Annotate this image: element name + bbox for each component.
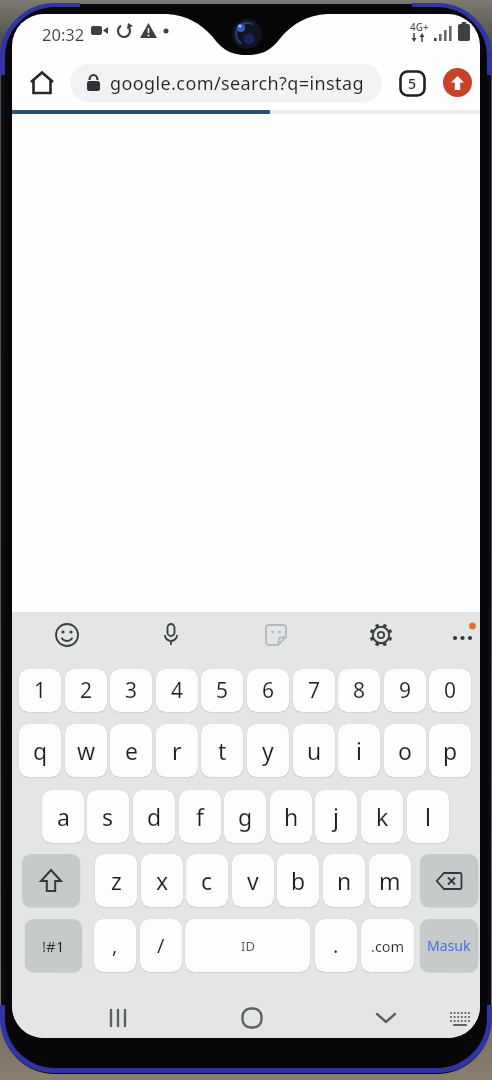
- button[interactable]: 7: [293, 669, 335, 712]
- button[interactable]: z: [95, 854, 137, 907]
- staticText: o: [398, 735, 412, 766]
- button[interactable]: [448, 621, 478, 651]
- button[interactable]: s: [87, 790, 129, 843]
- button[interactable]: f: [179, 790, 221, 843]
- staticText: i: [356, 735, 362, 766]
- staticText: 8: [353, 676, 366, 705]
- staticText: Masuk: [427, 936, 471, 955]
- button[interactable]: 5: [399, 70, 426, 97]
- staticText: 4: [171, 676, 184, 705]
- button[interactable]: 3: [110, 669, 152, 712]
- button[interactable]: 9: [384, 669, 426, 712]
- button[interactable]: y: [247, 724, 289, 777]
- button[interactable]: ,: [94, 919, 136, 972]
- staticText: b: [291, 865, 306, 896]
- button[interactable]: a: [42, 790, 84, 843]
- staticText: v: [247, 865, 259, 896]
- button[interactable]: [107, 1007, 131, 1029]
- button[interactable]: [367, 621, 395, 649]
- staticText: 5: [216, 676, 229, 705]
- button[interactable]: 8: [338, 669, 380, 712]
- button[interactable]: j: [315, 790, 357, 843]
- staticText: n: [337, 865, 352, 896]
- button[interactable]: t: [201, 724, 243, 777]
- button[interactable]: k: [361, 790, 403, 843]
- button[interactable]: 1: [19, 669, 61, 712]
- button[interactable]: /: [140, 919, 182, 972]
- staticText: w: [77, 735, 96, 766]
- button[interactable]: h: [270, 790, 312, 843]
- staticText: /: [157, 932, 165, 959]
- button[interactable]: 4: [156, 669, 198, 712]
- button[interactable]: x: [141, 854, 183, 907]
- staticText: 2: [80, 676, 93, 705]
- button[interactable]: q: [19, 724, 61, 777]
- button[interactable]: [241, 1007, 263, 1029]
- staticText: ID: [241, 937, 255, 955]
- button[interactable]: r: [156, 724, 198, 777]
- button[interactable]: l: [407, 790, 449, 843]
- staticText: 20:32: [42, 23, 85, 45]
- button[interactable]: e: [110, 724, 152, 777]
- button[interactable]: m: [369, 854, 411, 907]
- staticText: .: [333, 932, 339, 959]
- staticText: e: [125, 735, 138, 766]
- staticText: a: [57, 801, 70, 832]
- button[interactable]: 0: [429, 669, 471, 712]
- button[interactable]: i: [338, 724, 380, 777]
- button[interactable]: [28, 69, 56, 97]
- button[interactable]: g: [224, 790, 266, 843]
- staticText: 0: [444, 676, 457, 705]
- button[interactable]: d: [133, 790, 175, 843]
- button[interactable]: [420, 854, 478, 907]
- staticText: 6: [262, 676, 275, 705]
- staticText: s: [102, 801, 114, 832]
- staticText: 4G+: [410, 20, 429, 34]
- button[interactable]: [157, 621, 185, 649]
- button[interactable]: [53, 621, 81, 649]
- staticText: k: [376, 801, 389, 832]
- staticText: l: [425, 801, 431, 832]
- button[interactable]: .com: [361, 919, 414, 972]
- button[interactable]: c: [186, 854, 228, 907]
- staticText: !#1: [42, 936, 65, 956]
- staticText: f: [196, 801, 204, 832]
- staticText: z: [111, 865, 122, 896]
- button[interactable]: [375, 1011, 397, 1025]
- button[interactable]: 6: [247, 669, 289, 712]
- staticText: h: [284, 801, 299, 832]
- button[interactable]: !#1: [25, 919, 82, 972]
- button[interactable]: 2: [65, 669, 107, 712]
- button[interactable]: [22, 854, 80, 907]
- staticText: q: [33, 735, 48, 766]
- staticText: .com: [371, 936, 405, 956]
- staticText: r: [172, 735, 182, 766]
- button[interactable]: o: [384, 724, 426, 777]
- staticText: j: [333, 801, 339, 832]
- staticText: u: [307, 735, 322, 766]
- button[interactable]: Masuk: [420, 919, 478, 972]
- staticText: 1: [34, 676, 47, 705]
- button[interactable]: b: [277, 854, 319, 907]
- button[interactable]: ID: [185, 919, 310, 972]
- staticText: ,: [112, 932, 118, 959]
- staticText: m: [379, 865, 401, 896]
- staticText: google.com/search?q=instag: [110, 71, 364, 96]
- button[interactable]: [448, 1009, 472, 1027]
- staticText: c: [201, 865, 213, 896]
- button[interactable]: u: [293, 724, 335, 777]
- staticText: x: [156, 865, 169, 896]
- button[interactable]: 5: [201, 669, 243, 712]
- button[interactable]: .: [315, 919, 357, 972]
- button[interactable]: p: [429, 724, 471, 777]
- button[interactable]: w: [65, 724, 107, 777]
- staticText: d: [147, 801, 162, 832]
- staticText: g: [238, 801, 253, 832]
- button[interactable]: google.com/search?q=instag: [70, 64, 382, 102]
- button[interactable]: [443, 68, 472, 97]
- button[interactable]: [262, 621, 290, 649]
- button[interactable]: v: [232, 854, 274, 907]
- staticText: t: [218, 735, 227, 766]
- button[interactable]: n: [323, 854, 365, 907]
- staticText: 9: [399, 676, 412, 705]
